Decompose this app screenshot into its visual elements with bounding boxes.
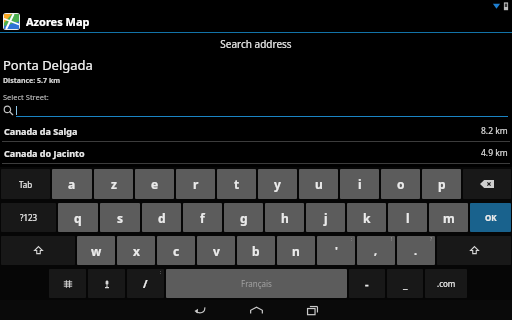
- button[interactable]: c: [157, 236, 195, 265]
- staticText: Français: [241, 278, 272, 289]
- button[interactable]: /: [127, 269, 164, 298]
- staticText: d: [158, 210, 166, 226]
- button[interactable]: .com: [425, 269, 467, 298]
- staticText: ': [335, 243, 338, 258]
- button[interactable]: m: [429, 203, 468, 232]
- staticText: Canada da Salga: [4, 125, 78, 137]
- staticText: _: [403, 276, 408, 291]
- staticText: e: [151, 176, 159, 192]
- staticText: l: [406, 210, 410, 226]
- staticText: /: [143, 276, 148, 291]
- button[interactable]: a: [52, 169, 92, 199]
- staticText: !: [391, 236, 393, 243]
- other: Search: [3, 105, 14, 116]
- button[interactable]: Search: [0, 103, 512, 117]
- staticText: ?123: [20, 212, 38, 223]
- button[interactable]: q: [58, 203, 98, 232]
- staticText: 4.9 km: [481, 147, 508, 159]
- button[interactable]: Voice input: [88, 269, 125, 298]
- staticText: Canada do Jacinto: [4, 147, 85, 159]
- staticText: u: [315, 176, 323, 192]
- staticText: Search address: [0, 37, 512, 51]
- button[interactable]: i: [340, 169, 379, 199]
- button[interactable]: Backspace: [463, 169, 511, 199]
- staticText: k: [363, 210, 371, 226]
- button[interactable]: y: [258, 169, 297, 199]
- button[interactable]: z: [94, 169, 133, 199]
- staticText: x: [133, 243, 140, 259]
- button[interactable]: e: [135, 169, 174, 199]
- button[interactable]: u: [299, 169, 338, 199]
- staticText: g: [240, 210, 248, 226]
- button[interactable]: s: [100, 203, 140, 232]
- button[interactable]: Switch input method: [49, 269, 86, 298]
- staticText: f: [200, 210, 205, 226]
- button[interactable]: Back: [183, 300, 217, 320]
- staticText: c: [173, 243, 180, 259]
- staticText: ,: [374, 243, 378, 258]
- button[interactable]: t: [217, 169, 256, 199]
- button[interactable]: Canada da Salga: [0, 120, 512, 141]
- button[interactable]: Tab: [1, 169, 50, 199]
- staticText: t: [234, 176, 240, 192]
- staticText: z: [111, 176, 117, 192]
- staticText: i: [358, 176, 362, 192]
- button[interactable]: .: [397, 236, 435, 265]
- staticText: .com: [437, 278, 456, 289]
- staticText: Select Street:: [3, 92, 49, 102]
- staticText: :: [351, 236, 353, 243]
- button[interactable]: OK: [470, 203, 511, 232]
- staticText: 8.2 km: [481, 125, 508, 137]
- button[interactable]: f: [183, 203, 222, 232]
- button[interactable]: -: [349, 269, 385, 298]
- staticText: .: [414, 243, 418, 258]
- button[interactable]: Shift: [437, 236, 511, 265]
- staticText: m: [443, 210, 455, 226]
- button[interactable]: j: [306, 203, 345, 232]
- button[interactable]: Français: [166, 269, 347, 298]
- staticText: w: [91, 243, 102, 259]
- button[interactable]: Recent apps: [295, 300, 329, 320]
- button[interactable]: d: [142, 203, 181, 232]
- staticText: Tab: [19, 179, 33, 190]
- button[interactable]: ': [317, 236, 355, 265]
- staticText: OK: [485, 212, 497, 223]
- button[interactable]: _: [387, 269, 423, 298]
- staticText: Distance: 5.7 km: [3, 76, 61, 86]
- button[interactable]: p: [422, 169, 461, 199]
- button[interactable]: h: [265, 203, 304, 232]
- staticText: ?: [430, 236, 433, 243]
- button[interactable]: Shift: [1, 236, 75, 265]
- staticText: a: [68, 176, 76, 192]
- button[interactable]: ,: [357, 236, 395, 265]
- staticText: h: [281, 210, 289, 226]
- staticText: Azores Map: [26, 14, 90, 29]
- button[interactable]: b: [237, 236, 275, 265]
- staticText: :: [160, 269, 162, 276]
- staticText: j: [324, 210, 328, 226]
- staticText: b: [252, 243, 260, 259]
- staticText: v: [213, 243, 220, 259]
- button[interactable]: g: [224, 203, 263, 232]
- staticText: p: [438, 176, 446, 192]
- button[interactable]: x: [117, 236, 155, 265]
- button[interactable]: Canada do Jacinto: [0, 142, 512, 163]
- button[interactable]: w: [77, 236, 115, 265]
- staticText: s: [117, 210, 124, 226]
- staticText: -: [365, 276, 369, 291]
- button[interactable]: v: [197, 236, 235, 265]
- button[interactable]: ?123: [1, 203, 56, 232]
- staticText: o: [397, 176, 405, 192]
- staticText: y: [274, 176, 281, 192]
- button[interactable]: o: [381, 169, 420, 199]
- button[interactable]: n: [277, 236, 315, 265]
- staticText: q: [74, 210, 82, 226]
- button[interactable]: Home: [239, 300, 273, 320]
- button[interactable]: r: [176, 169, 215, 199]
- staticText: r: [193, 176, 199, 192]
- staticText: Ponta Delgada: [3, 56, 93, 74]
- button[interactable]: k: [347, 203, 386, 232]
- button[interactable]: l: [388, 203, 427, 232]
- staticText: n: [292, 243, 300, 259]
